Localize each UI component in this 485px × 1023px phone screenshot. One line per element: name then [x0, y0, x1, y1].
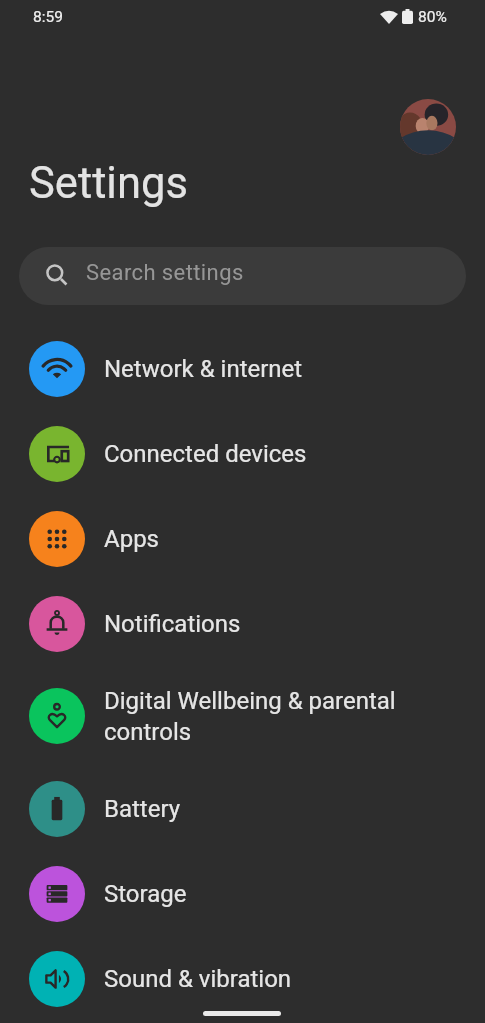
staticText: Search settings	[86, 260, 244, 286]
staticText: Connected devices	[104, 440, 307, 468]
staticText: Notifications	[104, 610, 241, 638]
staticText: Battery	[104, 795, 181, 823]
staticText: Storage	[104, 880, 187, 908]
button[interactable]	[400, 99, 456, 155]
staticText: Network & internet	[104, 355, 303, 383]
button[interactable]: Search settings	[19, 247, 466, 305]
staticText: Digital Wellbeing & parental controls	[104, 687, 396, 746]
staticText: Settings	[29, 158, 188, 209]
button[interactable]: Battery	[0, 766, 485, 851]
button[interactable]: Connected devices	[0, 411, 485, 496]
staticText: 80%	[418, 8, 447, 26]
button[interactable]: Apps	[0, 496, 485, 581]
button[interactable]: Sound & vibration	[0, 936, 485, 1021]
button[interactable]: Network & internet	[0, 326, 485, 411]
staticText: Sound & vibration	[104, 965, 292, 993]
staticText: 8:59	[33, 8, 63, 26]
button[interactable]: Storage	[0, 851, 485, 936]
button[interactable]: Notifications	[0, 581, 485, 666]
button[interactable]: Digital Wellbeing & parental controls	[0, 666, 485, 766]
staticText: Apps	[104, 525, 159, 553]
